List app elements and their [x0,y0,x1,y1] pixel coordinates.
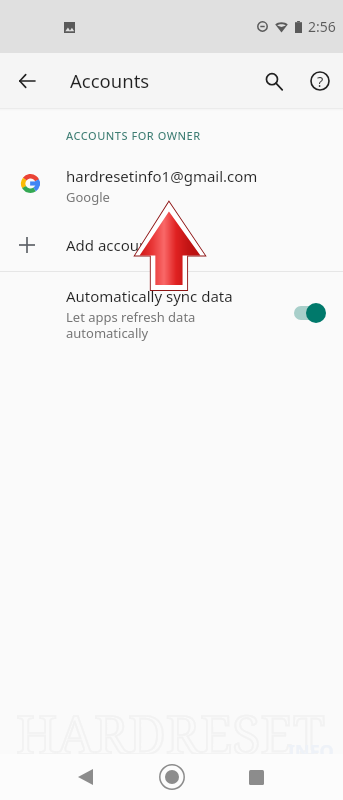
staticText: INFO [288,739,334,764]
button[interactable]: hardresetinfo1@gmail.com [0,158,343,214]
button[interactable]: Home [150,755,194,799]
staticText: Add account [66,235,154,255]
staticText: Let apps refresh data automatically [66,308,196,341]
button[interactable]: Help [299,60,341,102]
staticText: ACCOUNTS FOR OWNER [66,128,201,143]
button[interactable]: Back [6,60,48,102]
button[interactable]: Back [63,755,107,799]
staticText: hardresetinfo1@gmail.com [66,166,258,186]
staticText: ? [317,71,324,91]
staticText: Automatically sync data [66,286,233,306]
button[interactable]: Recents [234,755,278,799]
staticText: Google [66,188,110,206]
staticText: Accounts [70,68,150,93]
button[interactable]: Automatically sync data [0,286,343,341]
staticText: 2:56 [308,17,336,36]
button[interactable]: Add account [0,221,343,269]
staticText: HARDRESET [16,698,325,760]
button[interactable]: Search [252,60,294,102]
